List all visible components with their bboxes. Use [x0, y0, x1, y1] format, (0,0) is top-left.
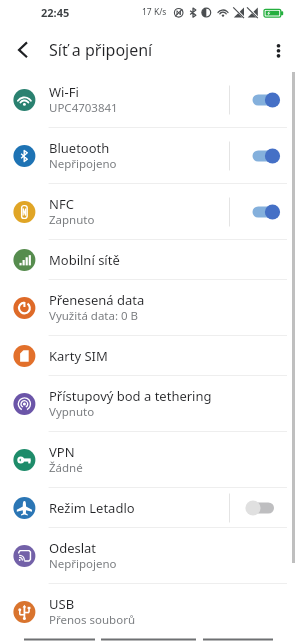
- staticText: Síť a připojení: [49, 39, 153, 61]
- staticText: Nepřipojeno: [49, 556, 117, 572]
- staticText: Režim Letadlo: [49, 499, 135, 517]
- button[interactable]: Přístupový bod a tethering: [0, 376, 296, 432]
- button[interactable]: Odeslat: [0, 528, 296, 584]
- staticText: Nepřipojeno: [49, 156, 117, 172]
- staticText: NFC: [49, 195, 74, 213]
- staticText: USB: [49, 595, 75, 613]
- staticText: Využitá data: 0 B: [49, 308, 139, 324]
- button[interactable]: Přenesená data: [0, 280, 296, 336]
- button[interactable]: More options: [258, 30, 294, 66]
- staticText: Přenos souborů: [49, 612, 135, 628]
- button[interactable]: Režim Letadlo: [0, 488, 296, 528]
- button[interactable]: Mobilní sítě: [0, 240, 296, 280]
- staticText: Zapnuto: [49, 212, 95, 228]
- staticText: Karty SIM: [49, 347, 108, 365]
- button[interactable]: Back: [3, 28, 43, 68]
- staticText: Wi-Fi: [49, 83, 79, 101]
- button[interactable]: Karty SIM: [0, 336, 296, 376]
- staticText: Odeslat: [49, 539, 97, 557]
- staticText: Žádné: [49, 460, 83, 476]
- staticText: Přístupový bod a tethering: [49, 387, 212, 405]
- button[interactable]: Wi-Fi: [0, 72, 296, 128]
- staticText: Přenesená data: [49, 291, 145, 309]
- button[interactable]: USB: [0, 584, 296, 640]
- staticText: Vypnuto: [49, 404, 95, 420]
- staticText: Mobilní sítě: [49, 251, 120, 269]
- staticText: Bluetooth: [49, 139, 110, 157]
- staticText: VPN: [49, 443, 75, 461]
- button[interactable]: NFC: [0, 184, 296, 240]
- staticText: 17 K/s: [142, 6, 167, 18]
- button[interactable]: VPN: [0, 432, 296, 488]
- staticText: 22:45: [41, 5, 70, 20]
- staticText: UPC4703841: [49, 100, 118, 116]
- button[interactable]: Bluetooth: [0, 128, 296, 184]
